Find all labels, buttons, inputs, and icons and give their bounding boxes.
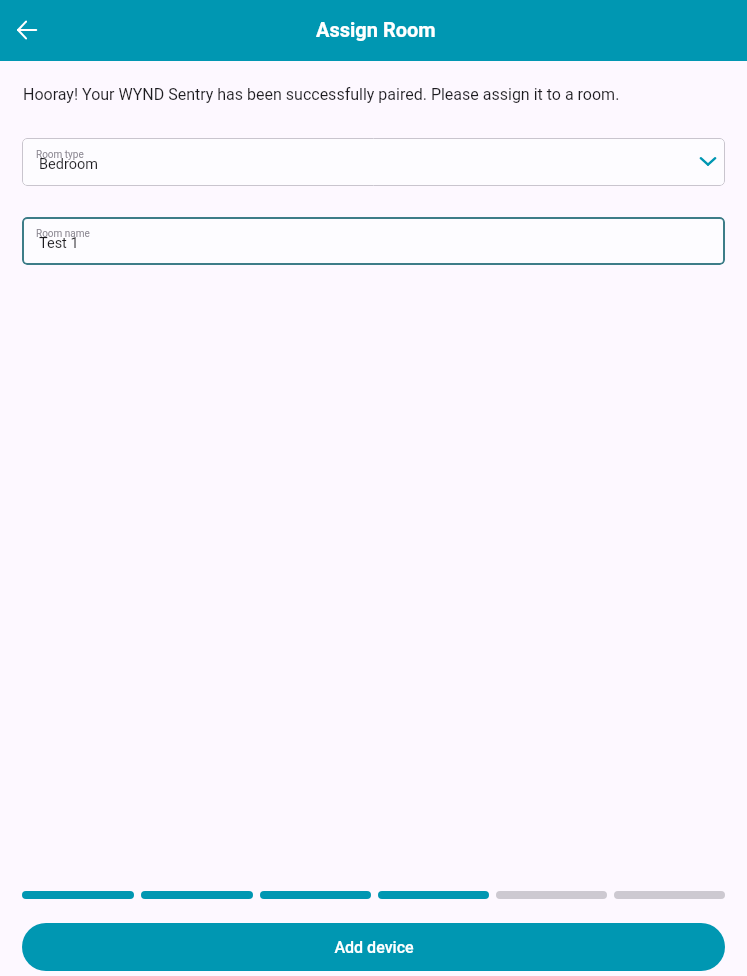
button[interactable]: Add device bbox=[22, 923, 725, 971]
button[interactable]: Room type bbox=[22, 138, 725, 186]
button[interactable]: Back bbox=[5, 8, 49, 52]
staticText: Bedroom bbox=[39, 156, 98, 173]
staticText: Room name bbox=[36, 228, 90, 240]
staticText: Room type bbox=[36, 149, 84, 161]
staticText: Assign Room bbox=[316, 18, 436, 41]
staticText: Test 1 bbox=[39, 235, 79, 252]
staticText: Hooray! Your WYND Sentry has been succes… bbox=[23, 85, 620, 104]
button[interactable]: Room name bbox=[22, 217, 725, 265]
staticText: Add device bbox=[334, 938, 414, 957]
